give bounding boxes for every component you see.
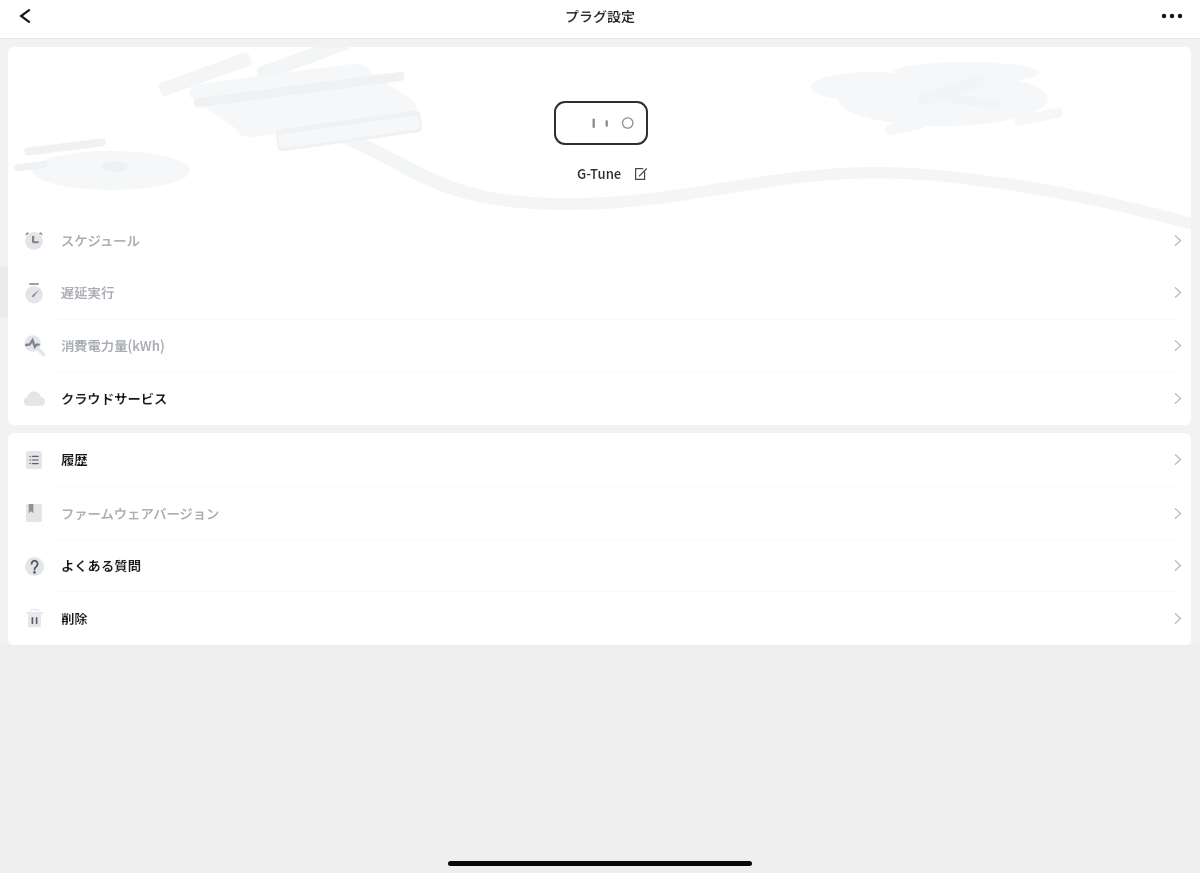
staticText: G-Tune [577, 164, 622, 183]
staticText: プラグ設定 [565, 6, 635, 26]
staticText: 遅延実行 [61, 283, 115, 302]
button[interactable]: 削除 [8, 591, 1191, 645]
staticText: 消費電力量(kWh) [61, 336, 165, 355]
button[interactable]: Back [0, 0, 48, 32]
button[interactable]: G-Tune [577, 164, 647, 183]
button[interactable]: 遅延実行 [8, 266, 1191, 319]
button[interactable]: 消費電力量(kWh) [8, 319, 1191, 371]
staticText: よくある質問 [61, 556, 141, 575]
staticText: ファームウェアバージョン [61, 504, 220, 523]
staticText: クラウドサービス [61, 389, 168, 408]
staticText: スケジュール [61, 231, 140, 250]
button[interactable]: よくある質問 [8, 540, 1191, 591]
button[interactable]: 履歴 [8, 433, 1191, 486]
button[interactable]: ファームウェアバージョン [8, 486, 1191, 540]
button[interactable]: スケジュール [8, 214, 1191, 266]
staticText: 履歴 [61, 450, 88, 469]
button[interactable]: クラウドサービス [8, 371, 1191, 425]
button[interactable]: More options [1148, 0, 1196, 32]
staticText: 削除 [61, 609, 88, 628]
